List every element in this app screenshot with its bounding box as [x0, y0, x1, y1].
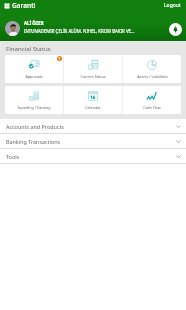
- staticText: Tools: [6, 153, 20, 160]
- button[interactable]: Cash Flow: [123, 86, 181, 114]
- staticText: ALİ ÖZER: [24, 20, 44, 26]
- button[interactable]: Current Status: [64, 55, 122, 83]
- staticText: Spending / Earning: [17, 105, 51, 110]
- button[interactable]: Approvals: [5, 55, 63, 83]
- button[interactable]: Spending / Earning: [5, 86, 63, 114]
- staticText: INTUNADEMIR ÇELİK ALÜM. NIHEL, KROM BAKI…: [24, 28, 135, 34]
- button[interactable]: Assets / Liabilities: [123, 55, 181, 83]
- button[interactable]: Tools: [0, 149, 186, 164]
- staticText: Assets / Liabilities: [137, 74, 168, 79]
- button[interactable]: Notifications: [169, 23, 182, 36]
- button[interactable]: Accounts and Products: [0, 119, 186, 134]
- staticText: Calendar: [85, 105, 101, 110]
- staticText: Garanti: [12, 1, 36, 10]
- staticText: Cash Flow: [143, 105, 161, 110]
- staticText: Approvals: [25, 74, 43, 79]
- staticText: Banking Transactions: [6, 138, 61, 145]
- staticText: Current Status: [80, 74, 106, 79]
- button[interactable]: Logout: [164, 2, 181, 9]
- staticText: Financial Status: [6, 44, 51, 52]
- button[interactable]: Banking Transactions: [0, 134, 186, 149]
- staticText: Accounts and Products: [6, 123, 64, 130]
- button[interactable]: Calendar: [64, 86, 122, 114]
- staticText: 1: [58, 56, 61, 61]
